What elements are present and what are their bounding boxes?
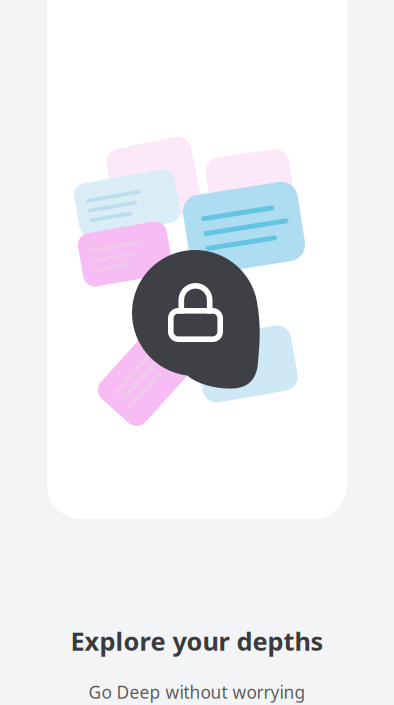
staticText: Explore your depths (70, 624, 323, 658)
staticText: Go Deep without worrying (88, 680, 305, 703)
